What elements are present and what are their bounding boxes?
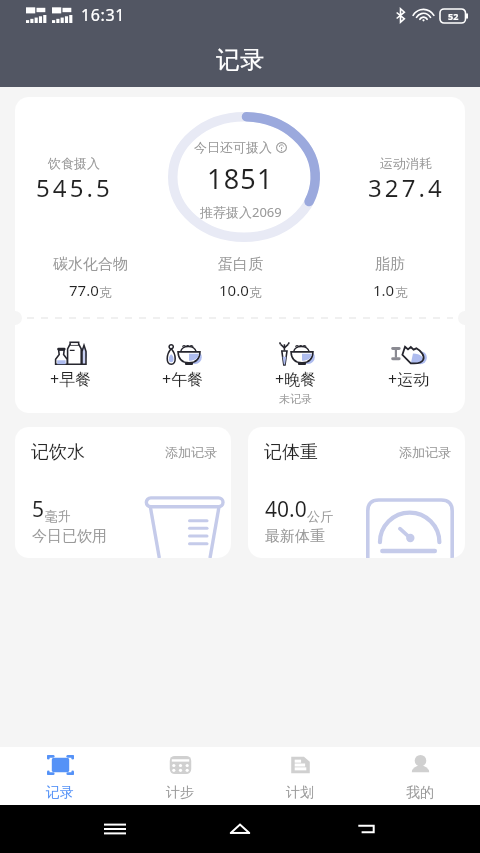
staticText: 1.0: [373, 280, 395, 300]
button[interactable]: 记录: [0, 747, 120, 805]
staticText: 脂肪: [375, 255, 405, 274]
staticText: 克: [249, 284, 262, 300]
staticText: 77.0: [69, 280, 99, 300]
staticText: 运动消耗: [380, 155, 432, 171]
staticText: 未记录: [279, 392, 312, 406]
staticText: 52: [448, 10, 459, 22]
staticText: 克: [395, 284, 408, 300]
staticText: +午餐: [162, 368, 204, 390]
other: Recents: [104, 818, 126, 840]
button[interactable]: 我的: [360, 747, 480, 805]
staticText: 添加记录: [399, 444, 451, 460]
staticText: 记录: [216, 45, 264, 75]
staticText: 记体重: [264, 441, 318, 464]
staticText: 添加记录: [165, 444, 217, 460]
button[interactable]: 计划: [240, 747, 360, 805]
staticText: +晚餐: [275, 368, 317, 390]
button[interactable]: +运动: [352, 340, 465, 390]
staticText: +早餐: [50, 368, 92, 390]
staticText: +运动: [388, 368, 430, 390]
staticText: 毫升: [45, 508, 71, 524]
staticText: 计步: [166, 784, 194, 802]
staticText: 5: [32, 495, 45, 524]
button[interactable]: 计步: [120, 747, 240, 805]
staticText: 计划: [286, 784, 314, 802]
staticText: 545.5: [36, 171, 113, 204]
staticText: 今日还可摄入: [194, 139, 272, 155]
other: Home: [229, 818, 251, 840]
staticText: 我的: [406, 784, 434, 802]
staticText: 最新体重: [265, 527, 325, 546]
staticText: 克: [99, 284, 112, 300]
other: Back: [355, 818, 377, 840]
staticText: 碳水化合物: [53, 255, 128, 274]
staticText: 40.0: [265, 495, 307, 524]
staticText: 蛋白质: [218, 255, 263, 274]
staticText: 推荐摄入2069: [200, 203, 282, 221]
staticText: 公斤: [307, 508, 333, 524]
staticText: 10.0: [219, 280, 249, 300]
staticText: 记饮水: [31, 441, 85, 464]
staticText: 16:31: [81, 4, 125, 26]
staticText: 327.4: [368, 171, 445, 204]
staticText: 记录: [46, 784, 74, 802]
button[interactable]: +晚餐: [239, 340, 352, 406]
button[interactable]: 记体重: [248, 427, 465, 558]
staticText: 今日已饮用: [32, 527, 107, 546]
button[interactable]: +早餐: [15, 340, 127, 390]
staticText: 饮食摄入: [48, 155, 100, 171]
staticText: 1851: [207, 160, 274, 197]
button[interactable]: +午餐: [127, 340, 239, 390]
button[interactable]: 记饮水: [15, 427, 231, 558]
